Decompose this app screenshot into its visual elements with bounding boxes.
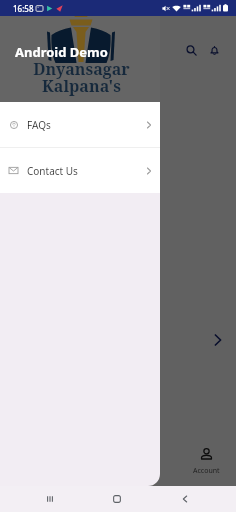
button[interactable]: Contact Us — [0, 148, 160, 193]
staticText: Android Demo — [15, 43, 108, 61]
staticText: FAQs — [27, 118, 51, 132]
button[interactable]: Notifications — [202, 38, 226, 62]
staticText: Account — [193, 466, 220, 476]
button[interactable]: Search — [179, 38, 203, 62]
button[interactable]: Notices — [118, 436, 177, 486]
staticText: Contact Us — [27, 164, 78, 178]
button[interactable]: Account — [177, 436, 236, 486]
button[interactable]: FAQs — [0, 102, 160, 147]
staticText: Dnyansagar Kalpana's — [33, 58, 130, 97]
button[interactable]: Next — [209, 331, 227, 349]
staticText: 16:58 — [13, 3, 34, 14]
